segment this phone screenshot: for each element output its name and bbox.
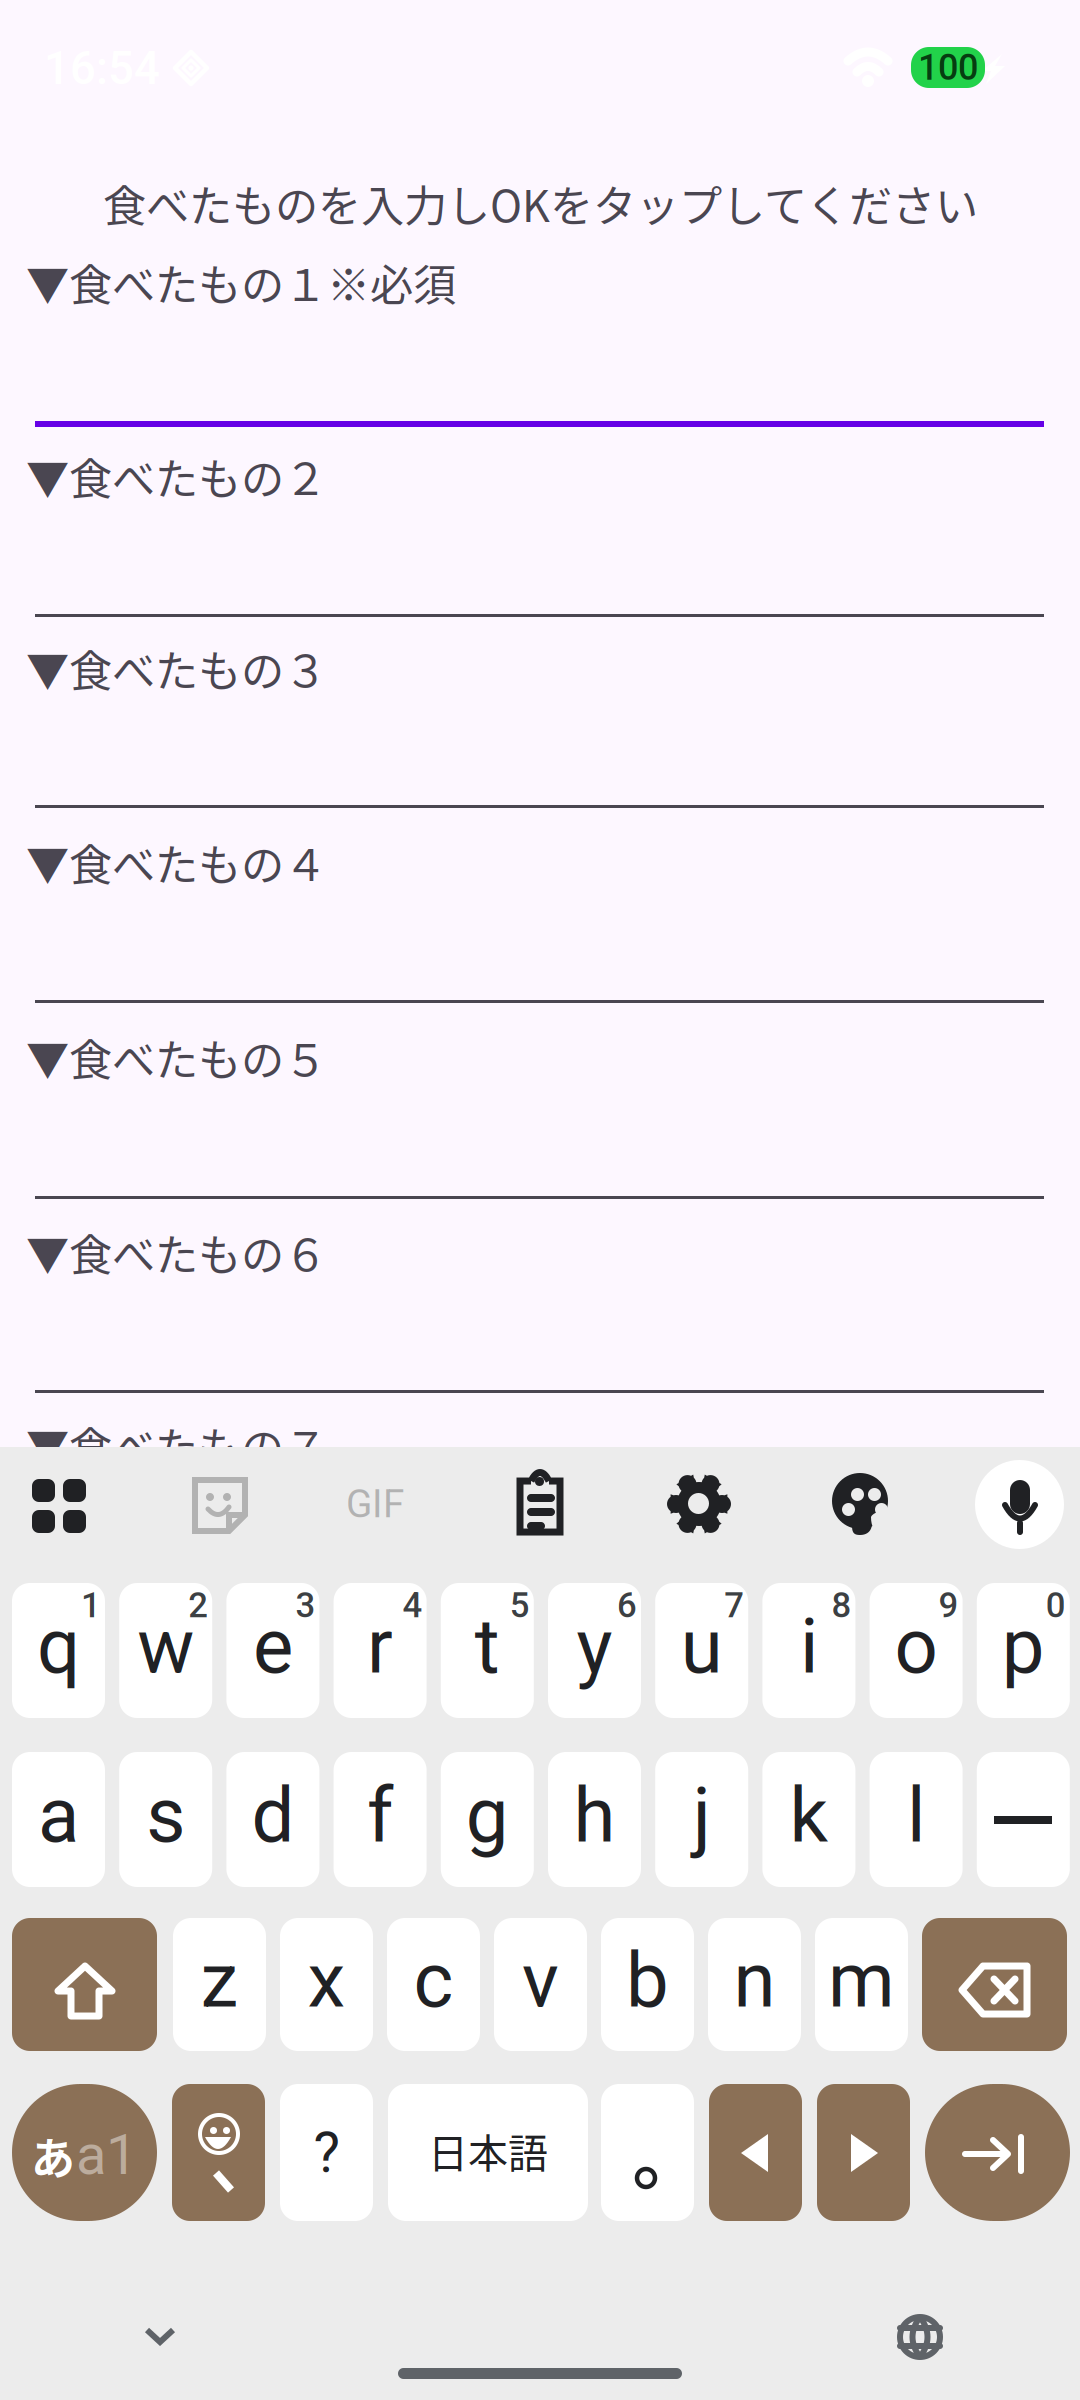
button[interactable] bbox=[12, 1918, 157, 2051]
staticText: 16:54 bbox=[44, 42, 160, 95]
staticText: e bbox=[253, 1602, 293, 1691]
button[interactable]: l bbox=[870, 1752, 963, 1887]
staticText: 日本語 bbox=[428, 2121, 548, 2179]
button[interactable]: あ bbox=[12, 2084, 157, 2221]
staticText: 8 bbox=[831, 1585, 851, 1626]
button[interactable]: Hide keyboard bbox=[115, 2297, 205, 2377]
staticText: v bbox=[522, 1936, 559, 2025]
button[interactable]: o bbox=[870, 1583, 963, 1718]
button[interactable]: n bbox=[708, 1918, 801, 2051]
staticText: g bbox=[466, 1771, 509, 1860]
button[interactable] bbox=[601, 2084, 694, 2221]
button[interactable]: q bbox=[12, 1583, 105, 1718]
button[interactable]: ▼食べたもの７ bbox=[26, 1414, 1035, 1604]
staticText: x bbox=[307, 1936, 345, 2025]
button[interactable]: a bbox=[12, 1752, 105, 1887]
button[interactable]: r bbox=[334, 1583, 427, 1718]
button[interactable] bbox=[977, 1752, 1070, 1887]
staticText: k bbox=[789, 1771, 828, 1860]
staticText: ▼食べたもの５ bbox=[26, 1026, 327, 1089]
staticText: あ bbox=[31, 2124, 75, 2188]
staticText: ▼食べたもの６ bbox=[26, 1221, 327, 1284]
staticText: 食べたものを入力しOKをタップしてください bbox=[103, 172, 978, 235]
staticText: q bbox=[37, 1602, 80, 1691]
staticText: t bbox=[475, 1602, 500, 1691]
staticText: 0 bbox=[1046, 1585, 1066, 1626]
button[interactable] bbox=[709, 2084, 802, 2221]
button[interactable]: h bbox=[548, 1752, 641, 1887]
staticText: c bbox=[413, 1936, 453, 2025]
button[interactable]: v bbox=[494, 1918, 587, 2051]
button[interactable]: u bbox=[655, 1583, 748, 1718]
button[interactable]: x bbox=[280, 1918, 373, 2051]
button[interactable]: i bbox=[762, 1583, 855, 1718]
staticText: z bbox=[200, 1936, 238, 2025]
button[interactable] bbox=[925, 2084, 1070, 2221]
staticText: n bbox=[733, 1936, 775, 2025]
button[interactable]: ▼食べたもの６ bbox=[26, 1221, 1035, 1411]
button[interactable]: j bbox=[655, 1752, 748, 1887]
staticText: s bbox=[146, 1771, 185, 1860]
staticText: j bbox=[693, 1771, 711, 1860]
staticText: 9 bbox=[939, 1585, 959, 1626]
button[interactable]: ▼食べたもの２ bbox=[26, 445, 1035, 635]
button[interactable]: g bbox=[441, 1752, 534, 1887]
staticText: 2 bbox=[188, 1585, 208, 1626]
button[interactable]: b bbox=[601, 1918, 694, 2051]
button[interactable]: ▼食べたもの３ bbox=[26, 637, 1035, 827]
button[interactable]: c bbox=[387, 1918, 480, 2051]
button[interactable]: y bbox=[548, 1583, 641, 1718]
staticText: a bbox=[38, 1771, 79, 1860]
staticText: 6 bbox=[617, 1585, 637, 1626]
button[interactable]: p bbox=[977, 1583, 1070, 1718]
staticText: 100 bbox=[918, 46, 978, 89]
staticText: o bbox=[895, 1602, 938, 1691]
button[interactable]: Theme bbox=[814, 1459, 904, 1549]
staticText: ▼食べたもの４ bbox=[26, 831, 327, 894]
staticText: ▼食べたもの７ bbox=[26, 1414, 327, 1477]
staticText: f bbox=[367, 1771, 393, 1860]
staticText: d bbox=[251, 1771, 294, 1860]
staticText: ? bbox=[313, 2120, 339, 2185]
staticText: 5 bbox=[510, 1585, 530, 1626]
button[interactable]: GIF bbox=[320, 1459, 430, 1549]
button[interactable]: Apps bbox=[14, 1459, 104, 1549]
staticText: ▼食べたもの３ bbox=[26, 637, 327, 700]
button[interactable]: f bbox=[334, 1752, 427, 1887]
button[interactable]: w bbox=[119, 1583, 212, 1718]
button[interactable]: Change input language bbox=[880, 2297, 960, 2377]
button[interactable]: ? bbox=[280, 2084, 373, 2221]
button[interactable]: Settings bbox=[654, 1459, 744, 1549]
staticText: 1 bbox=[81, 1585, 101, 1626]
staticText: GIF bbox=[346, 1481, 404, 1527]
button[interactable]: Clipboard bbox=[494, 1459, 584, 1549]
button[interactable]: ▼食べたもの４ bbox=[26, 831, 1035, 1021]
staticText: 7 bbox=[724, 1585, 744, 1626]
button[interactable]: Stickers bbox=[174, 1459, 264, 1549]
staticText: ▼食べたもの２ bbox=[26, 445, 327, 508]
staticText: 3 bbox=[295, 1585, 315, 1626]
staticText: y bbox=[576, 1602, 612, 1691]
button[interactable]: z bbox=[173, 1918, 266, 2051]
staticText: a1 bbox=[76, 2122, 137, 2188]
button[interactable]: t bbox=[441, 1583, 534, 1718]
button[interactable]: ▼食べたもの５ bbox=[26, 1026, 1035, 1216]
button[interactable]: ▼食べたもの１※必須 bbox=[26, 251, 1035, 441]
button[interactable] bbox=[172, 2084, 265, 2221]
staticText: u bbox=[681, 1602, 723, 1691]
button[interactable]: 日本語 bbox=[388, 2084, 588, 2221]
staticText: b bbox=[626, 1936, 669, 2025]
button[interactable]: s bbox=[119, 1752, 212, 1887]
button[interactable] bbox=[922, 1918, 1067, 2051]
staticText: p bbox=[1002, 1602, 1045, 1691]
button[interactable] bbox=[817, 2084, 910, 2221]
staticText: m bbox=[828, 1936, 895, 2025]
staticText: ▼食べたもの１※必須 bbox=[26, 251, 456, 314]
button[interactable]: d bbox=[226, 1752, 319, 1887]
button[interactable]: Voice input bbox=[975, 1460, 1064, 1549]
staticText: l bbox=[907, 1771, 925, 1860]
button[interactable]: m bbox=[815, 1918, 908, 2051]
button[interactable]: k bbox=[762, 1752, 855, 1887]
button[interactable]: e bbox=[226, 1583, 319, 1718]
staticText: i bbox=[800, 1602, 818, 1691]
